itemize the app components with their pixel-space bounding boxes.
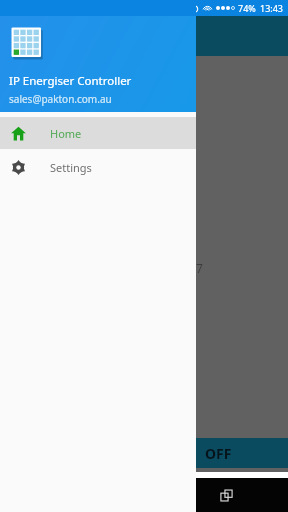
staticText: 7 bbox=[196, 260, 203, 276]
other: Settings bbox=[11, 160, 26, 175]
button[interactable]: Recent apps bbox=[206, 478, 246, 512]
staticText: 74% bbox=[238, 2, 256, 14]
button[interactable]: Home bbox=[0, 117, 196, 149]
staticText: sales@pakton.com.au bbox=[9, 92, 112, 106]
other: Home bbox=[11, 126, 26, 141]
staticText: OFF bbox=[205, 444, 232, 463]
staticText: IP Energiser Controller bbox=[9, 73, 132, 89]
staticText: 13:43 bbox=[260, 2, 284, 14]
staticText: Home bbox=[50, 126, 82, 141]
button[interactable]: OFF bbox=[196, 438, 288, 468]
button[interactable]: Settings bbox=[0, 151, 196, 183]
staticText: Settings bbox=[50, 160, 92, 175]
